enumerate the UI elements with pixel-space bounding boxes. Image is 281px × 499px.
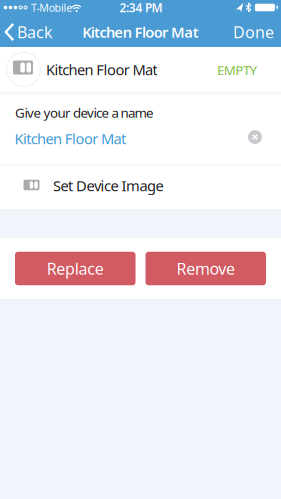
button[interactable]: Clear text bbox=[248, 130, 262, 144]
staticText: Set Device Image bbox=[53, 176, 163, 195]
button[interactable]: Remove bbox=[145, 252, 266, 285]
staticText: Give your device a name bbox=[15, 104, 154, 121]
staticText: Kitchen Floor Mat bbox=[46, 60, 157, 79]
staticText: 2:34 PM bbox=[119, 0, 163, 15]
staticText: T-Mobile bbox=[31, 0, 72, 15]
staticText: Kitchen Floor Mat bbox=[14, 129, 126, 148]
staticText: EMPTY bbox=[217, 61, 257, 79]
staticText: Done bbox=[233, 21, 274, 43]
button[interactable]: Done bbox=[225, 16, 281, 48]
staticText: Back bbox=[17, 21, 53, 43]
button[interactable]: Replace bbox=[15, 252, 135, 285]
button[interactable]: Set Device Image bbox=[0, 166, 281, 209]
staticText: Remove bbox=[176, 258, 235, 279]
staticText: Kitchen Floor Mat bbox=[82, 22, 199, 42]
button[interactable]: Back bbox=[0, 15, 58, 47]
staticText: Replace bbox=[47, 258, 104, 279]
